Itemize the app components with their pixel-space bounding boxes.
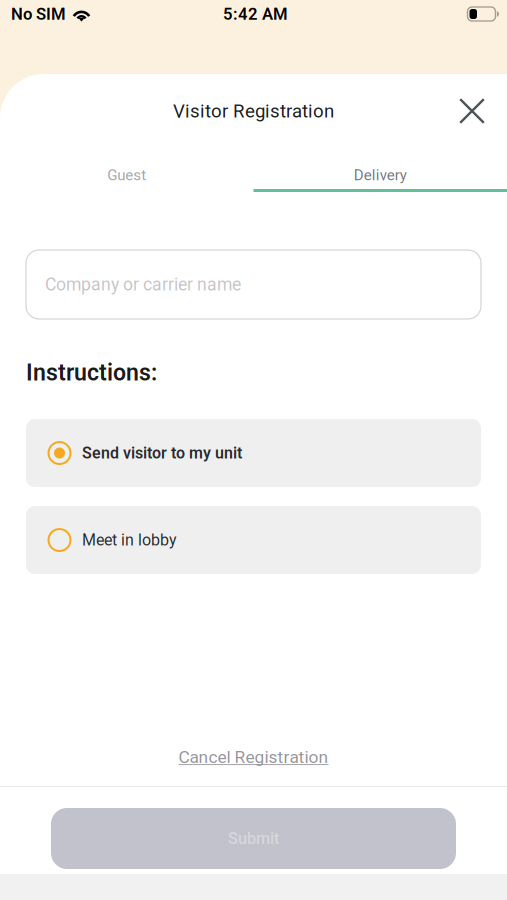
button[interactable]: Company or carrier name (26, 250, 481, 319)
staticText: Cancel Registration (178, 747, 328, 767)
button[interactable]: Meet in lobby (26, 506, 481, 574)
staticText: Delivery (354, 166, 407, 184)
button[interactable]: Guest (0, 148, 253, 192)
staticText: Guest (107, 166, 146, 184)
staticText: 5:42 AM (223, 4, 288, 24)
staticText: No SIM (11, 4, 66, 24)
staticText: Visitor Registration (173, 100, 334, 122)
staticText: Company or carrier name (45, 274, 241, 295)
button[interactable]: Submit (51, 808, 456, 869)
button[interactable]: Delivery (253, 148, 507, 192)
button[interactable]: Close (452, 91, 492, 131)
staticText: Instructions: (26, 359, 157, 386)
staticText: Send visitor to my unit (82, 444, 242, 462)
staticText: Submit (228, 829, 279, 848)
button[interactable]: Send visitor to my unit (26, 419, 481, 487)
button[interactable]: Cancel Registration (26, 737, 481, 777)
staticText: Meet in lobby (82, 531, 177, 549)
